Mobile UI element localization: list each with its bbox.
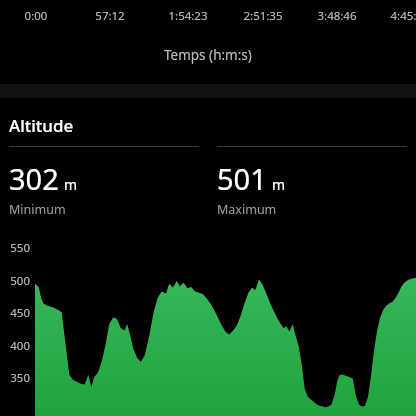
- staticText: 500: [2, 273, 30, 289]
- staticText: m: [272, 175, 286, 194]
- staticText: 501: [217, 159, 267, 198]
- staticText: 4:45:57: [365, 8, 416, 24]
- staticText: m: [64, 175, 78, 194]
- staticText: Altitude: [9, 114, 74, 137]
- staticText: 450: [2, 305, 30, 321]
- staticText: Minimum: [9, 201, 66, 218]
- staticText: 3:48:46: [292, 8, 382, 24]
- staticText: 0:00: [0, 8, 81, 24]
- staticText: 2:51:35: [218, 8, 308, 24]
- staticText: 302: [9, 159, 59, 198]
- staticText: 1:54:23: [143, 8, 233, 24]
- staticText: Temps (h:m:s): [164, 46, 252, 64]
- staticText: Maximum: [217, 201, 277, 218]
- button[interactable]: 501: [208, 146, 416, 228]
- staticText: 550: [2, 240, 30, 256]
- staticText: 400: [2, 338, 30, 354]
- staticText: 57:12: [65, 8, 155, 24]
- staticText: 350: [2, 370, 30, 386]
- button[interactable]: 302: [0, 146, 208, 228]
